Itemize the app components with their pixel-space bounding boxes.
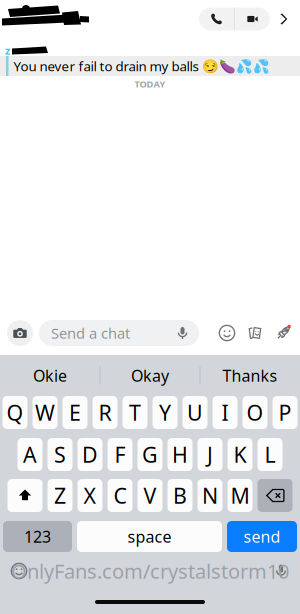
staticText: send	[243, 526, 280, 547]
staticText: N	[202, 481, 218, 510]
staticText: D	[82, 440, 98, 469]
staticText: J	[207, 440, 213, 469]
staticText: Thanks	[222, 365, 277, 386]
button[interactable]: Emoji keyboard	[0, 556, 38, 586]
staticText: C	[113, 481, 126, 510]
staticText: z	[5, 43, 10, 58]
button[interactable]: C	[107, 479, 132, 512]
staticText: Okie	[33, 365, 67, 386]
staticText: E	[69, 398, 81, 427]
staticText: P	[278, 398, 291, 427]
button[interactable]: D	[77, 438, 102, 471]
staticText: I	[221, 398, 228, 427]
button[interactable]: E	[62, 396, 87, 429]
staticText: T	[129, 398, 141, 427]
staticText: A	[23, 440, 37, 469]
button[interactable]: I	[212, 396, 237, 429]
button[interactable]: Video call	[235, 7, 270, 30]
staticText: 123	[24, 526, 51, 547]
button[interactable]: space	[77, 521, 222, 552]
button[interactable]: Y	[152, 396, 177, 429]
button[interactable]: L	[257, 438, 282, 471]
staticText: You never fail to drain my balls 😏🍆💦💦	[13, 57, 269, 75]
button[interactable]: X	[77, 479, 102, 512]
button[interactable]: B	[167, 479, 192, 512]
button[interactable]: Okie	[0, 360, 99, 390]
button[interactable]: P	[272, 396, 297, 429]
staticText: K	[233, 440, 246, 469]
button[interactable]: O	[242, 396, 267, 429]
button[interactable]: J	[197, 438, 222, 471]
button[interactable]: Camera	[7, 320, 33, 346]
button[interactable]: Conversation settings	[270, 5, 296, 33]
staticText: Send a chat	[51, 323, 130, 343]
staticText: Z	[54, 481, 66, 510]
button[interactable]: R	[92, 396, 117, 429]
button[interactable]: Thanks	[200, 360, 299, 390]
button[interactable]: Cameos	[241, 319, 269, 347]
button[interactable]: Games	[269, 319, 297, 347]
button[interactable]: W	[32, 396, 57, 429]
staticText: R	[98, 398, 111, 427]
staticText: S	[54, 440, 66, 469]
staticText: Q	[6, 398, 23, 427]
staticText: G	[142, 440, 158, 469]
button[interactable]: send	[227, 521, 297, 552]
button[interactable]: U	[182, 396, 207, 429]
staticText: Okay	[131, 365, 169, 386]
button[interactable]: T	[122, 396, 147, 429]
button[interactable]: G	[137, 438, 162, 471]
staticText: W	[35, 398, 55, 427]
button[interactable]: Shift	[7, 479, 42, 512]
button[interactable]: Dictation	[262, 556, 300, 586]
button[interactable]: F	[107, 438, 132, 471]
button[interactable]: M	[227, 479, 252, 512]
staticText: B	[173, 481, 187, 510]
staticText: space	[127, 526, 171, 547]
button[interactable]: Z	[47, 479, 72, 512]
button[interactable]: Stickers	[213, 319, 241, 347]
button[interactable]: 123	[3, 521, 72, 552]
staticText: V	[143, 481, 156, 510]
staticText: TODAY	[134, 78, 165, 90]
button[interactable]: V	[137, 479, 162, 512]
staticText: U	[187, 398, 203, 427]
button[interactable]: Q	[2, 396, 27, 429]
button[interactable]: Okay	[100, 360, 199, 390]
staticText: M	[230, 481, 249, 510]
button[interactable]: K	[227, 438, 252, 471]
staticText: Y	[159, 398, 171, 427]
staticText: L	[264, 440, 275, 469]
button[interactable]: N	[197, 479, 222, 512]
button[interactable]: H	[167, 438, 192, 471]
staticText: F	[114, 440, 125, 469]
button[interactable]: Delete	[257, 479, 292, 512]
staticText: OnlyFans.com/crystalstorm10	[11, 558, 289, 584]
staticText: O	[246, 398, 263, 427]
button[interactable]: Voice call	[199, 7, 234, 30]
button[interactable]: Send a chat	[39, 320, 199, 346]
button[interactable]: S	[47, 438, 72, 471]
staticText: H	[172, 440, 188, 469]
button[interactable]: A	[17, 438, 42, 471]
staticText: X	[83, 481, 96, 510]
